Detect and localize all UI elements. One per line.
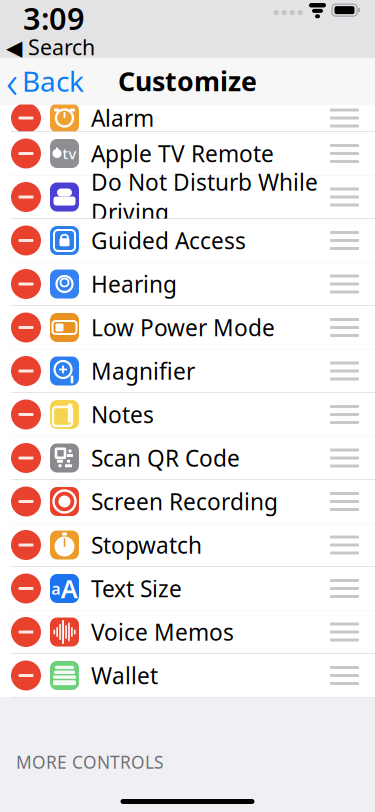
staticText: Low Power Mode bbox=[91, 312, 275, 342]
staticText: Do Not Disturb While Driving bbox=[91, 167, 318, 227]
button[interactable]: Remove Guided Access bbox=[0, 218, 50, 262]
button[interactable]: Reorder Wallet bbox=[330, 656, 375, 695]
staticText: Alarm bbox=[91, 103, 154, 133]
staticText: Screen Recording bbox=[91, 486, 278, 516]
staticText: ‹ bbox=[6, 51, 18, 111]
button[interactable]: Reorder Text Size bbox=[330, 569, 375, 608]
staticText: Text Size bbox=[91, 573, 182, 603]
button[interactable]: Do Not Disturb While Driving bbox=[0, 175, 375, 219]
button[interactable]: Remove Text Size bbox=[0, 566, 50, 610]
button[interactable]: Remove Scan QR Code bbox=[0, 436, 50, 480]
button[interactable]: Hearing bbox=[0, 262, 375, 306]
staticText: Voice Memos bbox=[91, 617, 234, 647]
staticText: Apple TV Remote bbox=[91, 138, 274, 168]
button[interactable]: ‹ bbox=[0, 47, 84, 115]
button[interactable]: Remove Apple TV Remote bbox=[0, 131, 50, 175]
button[interactable]: Remove Do Not Disturb While Driving bbox=[0, 175, 50, 219]
staticText: Guided Access bbox=[91, 225, 246, 255]
button[interactable]: Voice Memos bbox=[0, 610, 375, 654]
button[interactable]: ◀ Search bbox=[0, 36, 375, 58]
button[interactable]: Stopwatch bbox=[0, 523, 375, 567]
staticText: Magnifier bbox=[91, 356, 195, 386]
button[interactable]: Reorder Magnifier bbox=[330, 351, 375, 390]
button[interactable]: Remove Low Power Mode bbox=[0, 305, 50, 349]
button[interactable]: Reorder Hearing bbox=[330, 264, 375, 303]
staticText: Back bbox=[22, 62, 84, 100]
button[interactable]: Remove Voice Memos bbox=[0, 610, 50, 654]
button[interactable]: Notes bbox=[0, 393, 375, 436]
button[interactable]: Remove Magnifier bbox=[0, 349, 50, 393]
staticText: Hearing bbox=[91, 269, 177, 299]
staticText: Customize bbox=[118, 63, 257, 99]
button[interactable]: Screen Recording bbox=[0, 480, 375, 523]
staticText: 3:09 bbox=[23, 0, 85, 38]
button[interactable]: Reorder Stopwatch bbox=[330, 525, 375, 564]
button[interactable]: Remove Screen Recording bbox=[0, 479, 50, 523]
button[interactable]: Wallet bbox=[0, 654, 375, 697]
button[interactable]: Reorder Screen Recording bbox=[330, 482, 375, 521]
button[interactable]: Reorder Low Power Mode bbox=[330, 308, 375, 347]
staticText: MORE CONTROLS bbox=[16, 750, 164, 773]
button[interactable]: Low Power Mode bbox=[0, 306, 375, 349]
button[interactable]: Remove Notes bbox=[0, 392, 50, 436]
button[interactable]: a bbox=[0, 567, 375, 610]
button[interactable]: Reorder Notes bbox=[330, 395, 375, 434]
staticText: A bbox=[61, 572, 78, 605]
button[interactable]: Reorder Guided Access bbox=[330, 221, 375, 260]
staticText: a bbox=[51, 578, 60, 599]
button[interactable]: Remove Hearing bbox=[0, 262, 50, 306]
button[interactable]: Reorder Voice Memos bbox=[330, 612, 375, 651]
button[interactable]: Remove Stopwatch bbox=[0, 523, 50, 567]
button[interactable]: tv bbox=[0, 132, 375, 175]
button[interactable]: Reorder Do Not Disturb While Driving bbox=[330, 177, 375, 216]
button[interactable]: Guided Access bbox=[0, 219, 375, 262]
button[interactable]: Scan QR Code bbox=[0, 436, 375, 480]
staticText: tv bbox=[62, 144, 76, 163]
button[interactable]: Reorder Scan QR Code bbox=[330, 438, 375, 477]
button[interactable]: Remove Wallet bbox=[0, 653, 50, 697]
staticText: Scan QR Code bbox=[91, 443, 240, 473]
button[interactable]: Magnifier bbox=[0, 349, 375, 393]
staticText: Notes bbox=[91, 399, 154, 429]
button[interactable]: Reorder Apple TV Remote bbox=[330, 134, 375, 173]
button[interactable]: Alarm bbox=[0, 104, 375, 132]
staticText: Stopwatch bbox=[91, 530, 202, 560]
staticText: Wallet bbox=[91, 660, 158, 690]
staticText: ◀ Search bbox=[6, 33, 95, 61]
